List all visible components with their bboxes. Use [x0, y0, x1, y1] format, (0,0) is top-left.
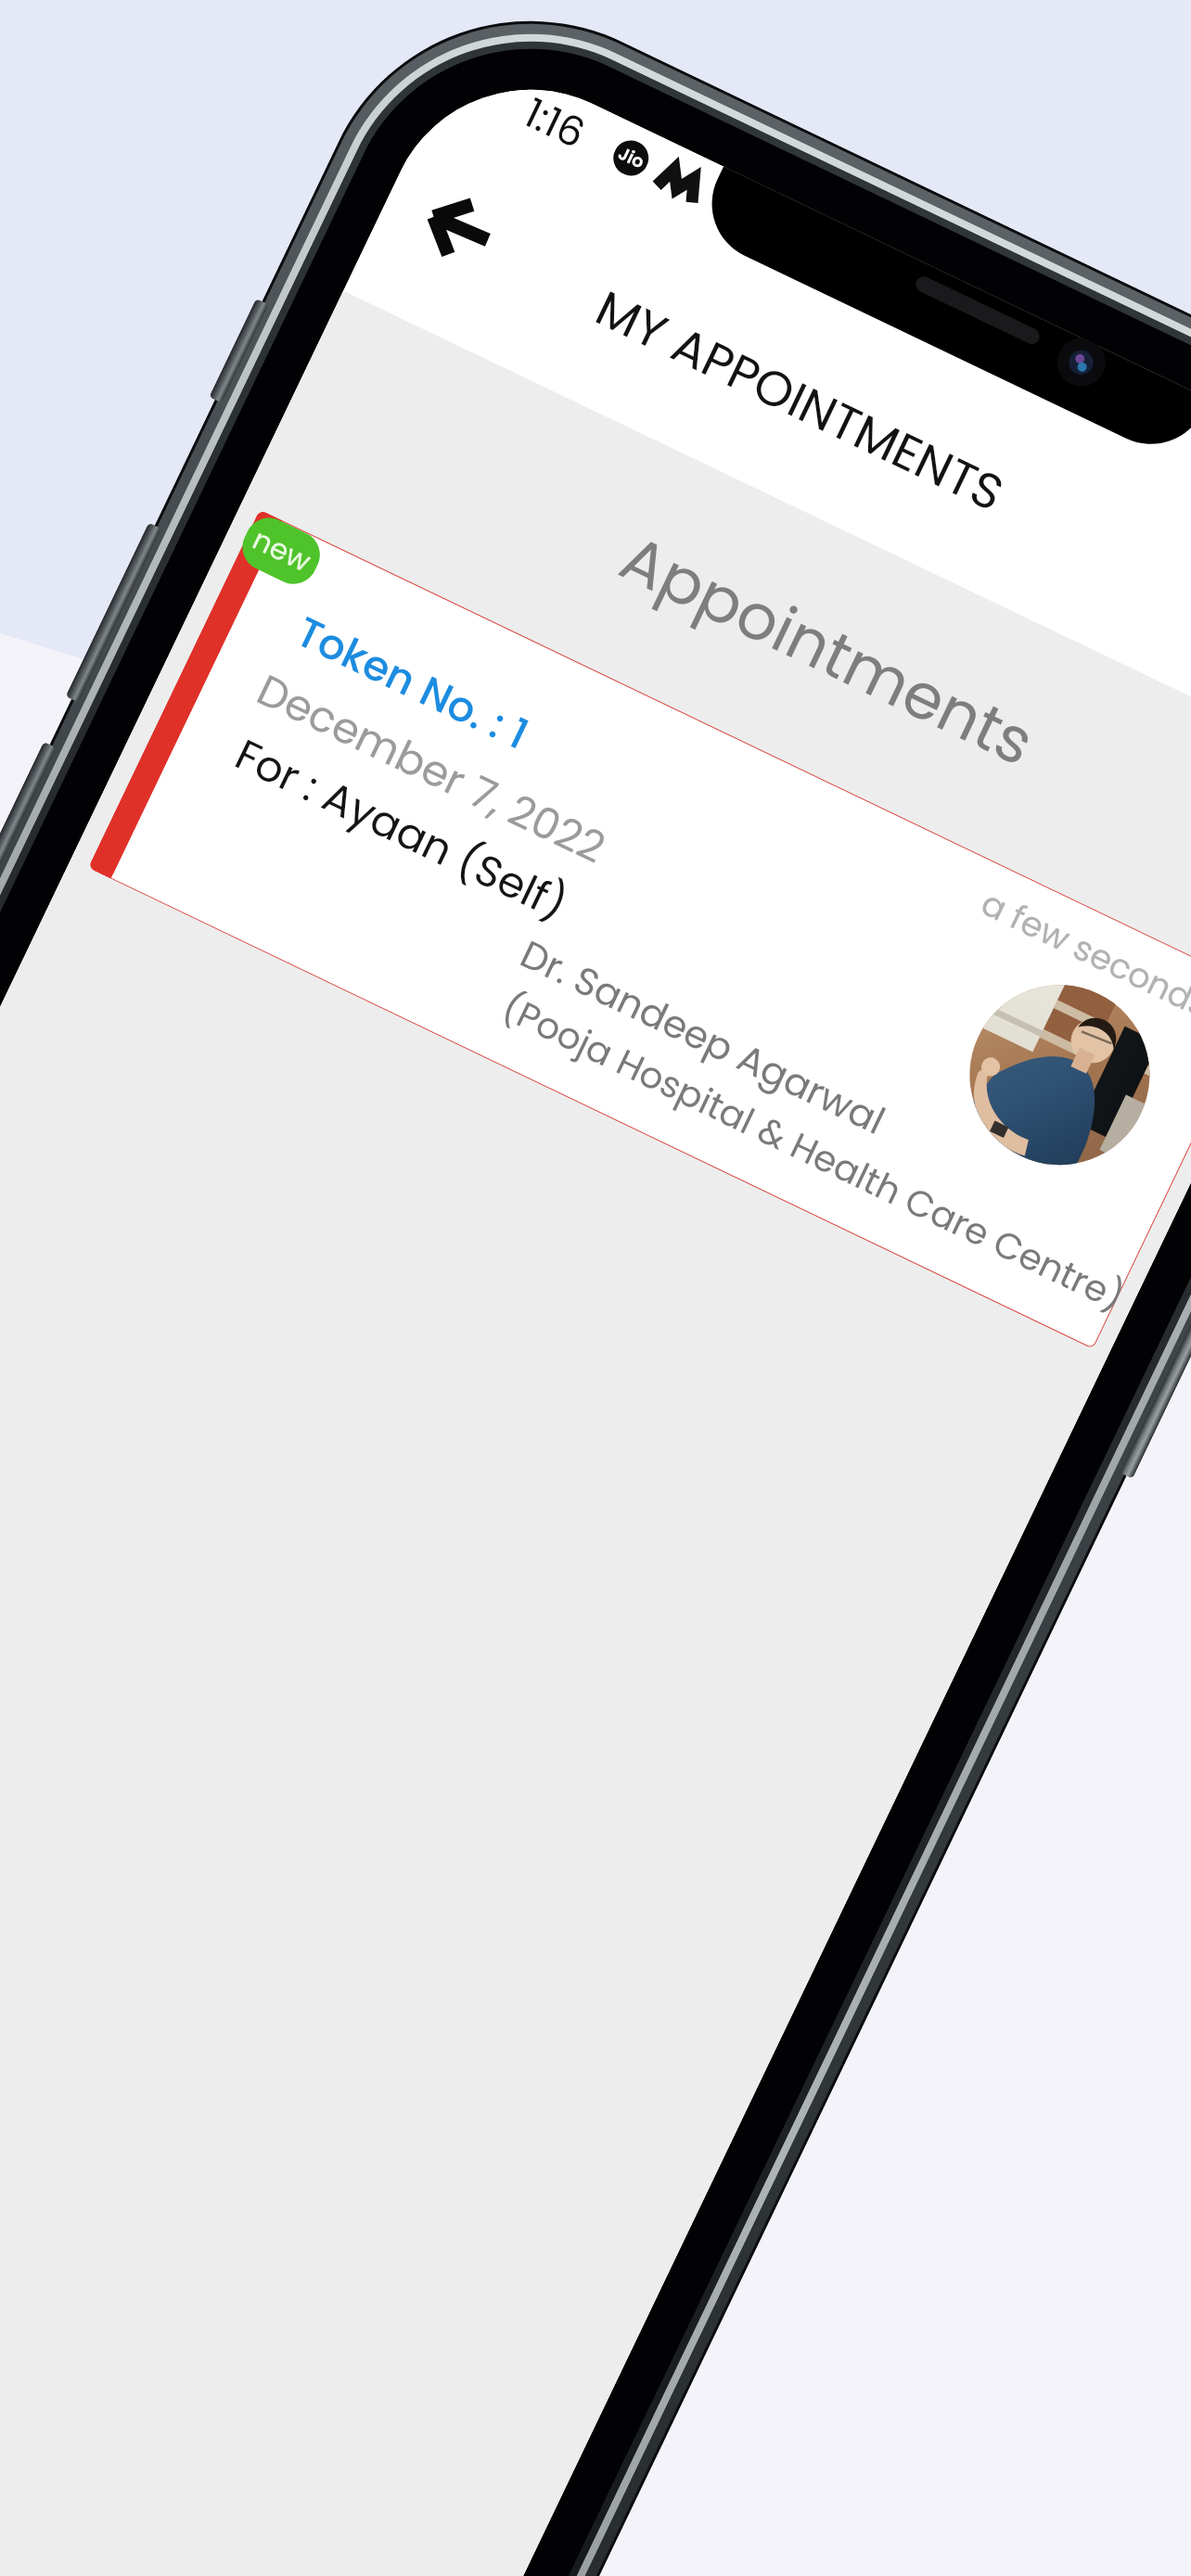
button[interactable]: Token No. : 1 — [88, 510, 1191, 1349]
staticText: Token No. : 1 — [287, 603, 538, 764]
staticText: MY APPOINTMENTS — [585, 274, 1015, 527]
staticText: For : Ayaan (Self) — [226, 725, 577, 934]
button[interactable]: Back — [395, 165, 523, 293]
staticText: a few seconds ago — [973, 879, 1191, 1049]
staticText: Jio — [614, 141, 649, 175]
staticText: December 7, 2022 — [247, 660, 615, 877]
staticText: new — [246, 519, 318, 581]
staticText: (Pooja Hospital & Health Care Centre) — [494, 982, 1128, 1321]
staticText: Dr. Sandeep Agarwal — [512, 927, 894, 1147]
staticText: Appointments — [606, 514, 1048, 787]
button[interactable]: Appointments — [242, 291, 1191, 998]
staticText: 1:16 — [515, 85, 595, 163]
